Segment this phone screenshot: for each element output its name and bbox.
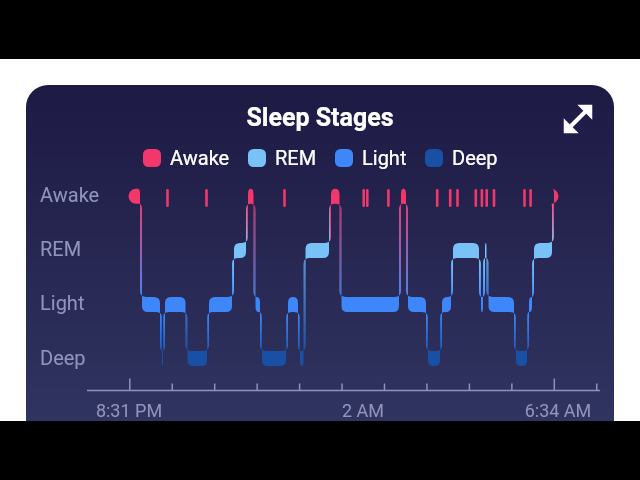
staticText: 6:34 AM <box>503 400 613 421</box>
button[interactable]: Expand chart <box>561 102 595 136</box>
staticText: Light <box>40 291 85 314</box>
button[interactable]: Deep <box>425 146 498 169</box>
staticText: Light <box>362 146 407 169</box>
staticText: 2 AM <box>308 400 418 421</box>
button[interactable]: Light <box>335 146 407 169</box>
staticText: Awake <box>170 146 230 169</box>
staticText: Deep <box>452 146 498 169</box>
button[interactable]: Awake <box>143 146 230 169</box>
staticText: Sleep Stages <box>26 103 614 132</box>
staticText: 8:31 PM <box>74 400 184 421</box>
staticText: Awake <box>40 183 100 206</box>
staticText: Deep <box>40 346 86 369</box>
button[interactable]: REM <box>248 146 317 169</box>
staticText: REM <box>275 146 317 169</box>
staticText: REM <box>40 237 82 260</box>
